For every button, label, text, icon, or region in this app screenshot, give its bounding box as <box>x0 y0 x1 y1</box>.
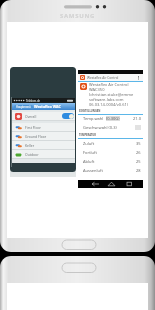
button[interactable]: Westaflex Air Control <box>80 82 134 107</box>
staticText: Hauptmenü <box>16 105 31 109</box>
staticText: (0-30G) <box>106 116 120 121</box>
staticText: Keller <box>25 143 35 148</box>
staticText: 28 <box>136 168 141 173</box>
button[interactable]: Temp.wahl <box>78 114 143 123</box>
button[interactable]: More options <box>136 75 141 80</box>
staticText: Temp.wahl <box>83 116 105 121</box>
staticText: EINSTELLUNGEN <box>79 109 101 113</box>
staticText: Fortluft <box>83 150 97 155</box>
staticText: TEMPERATUR <box>79 133 96 137</box>
staticText: Overall <box>25 114 37 119</box>
staticText: Abluft <box>83 159 95 164</box>
button[interactable]: Zuluft <box>78 139 143 148</box>
button[interactable]: Geschw.wahl (0-3) <box>78 123 143 132</box>
button[interactable]: Westaflex Air Control <box>78 74 143 81</box>
button[interactable]: First Floor <box>12 123 75 131</box>
staticText: software-labs.com <box>89 97 124 102</box>
staticText: Westaflex Air Control <box>87 76 119 80</box>
button[interactable]: Outdoor <box>12 150 75 158</box>
staticText: 35 <box>136 141 141 146</box>
button[interactable]: Keller <box>12 141 75 149</box>
staticText: WAC350 <box>89 87 105 92</box>
staticText: Aussenluft <box>83 168 103 173</box>
button[interactable]: Aussenluft <box>78 166 143 175</box>
staticText: 25 <box>136 159 141 164</box>
staticText: Zuluft <box>83 141 95 146</box>
staticText: (christian.stuke@emme <box>89 92 134 97</box>
button[interactable]: Hauptmenü <box>16 105 31 109</box>
staticText: 21.0 <box>133 116 141 121</box>
button[interactable]: Abluft <box>78 157 143 166</box>
staticText: SAMSUNG <box>60 12 96 20</box>
staticText: First Floor <box>25 125 41 130</box>
staticText: Westaflex Air Control <box>89 82 129 87</box>
button[interactable]: Overall on <box>62 113 74 119</box>
staticText: Telekom.de <box>26 99 40 103</box>
staticText: Outdoor <box>25 152 39 157</box>
staticText: 26 <box>136 150 141 155</box>
button[interactable]: Overall <box>12 112 75 120</box>
button[interactable]: Ground Floor <box>12 132 75 140</box>
staticText: Geschw.wahl (0-3) <box>83 125 117 130</box>
staticText: Ground Floor <box>25 134 47 139</box>
staticText: Westaflex WAC <box>34 104 61 109</box>
staticText: 06.03.14-0004/v0.61) <box>89 102 128 107</box>
button[interactable]: Fortluft <box>78 148 143 157</box>
